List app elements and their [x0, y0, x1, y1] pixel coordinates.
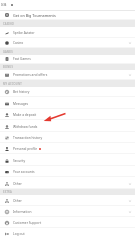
- button[interactable]: Your accounts: [0, 166, 135, 177]
- button[interactable]: Messages: [0, 98, 135, 109]
- button[interactable]: Transaction history: [0, 132, 135, 143]
- button[interactable]: Other: [0, 195, 135, 206]
- button[interactable]: Get on Big Tournaments: [0, 10, 135, 20]
- staticText: Security: [13, 159, 26, 163]
- staticText: Bet history: [13, 90, 30, 94]
- button[interactable]: Fast Games: [0, 54, 135, 64]
- button[interactable]: Promotions and offers: [0, 69, 135, 80]
- staticText: Promotions and offers: [13, 73, 48, 77]
- button[interactable]: Other: [0, 178, 135, 189]
- button[interactable]: Withdraw funds: [0, 121, 135, 132]
- button[interactable]: Casino: [0, 38, 135, 48]
- staticText: GAMES: [3, 50, 13, 54]
- staticText: BONUS: [3, 65, 14, 69]
- staticText: Log out: [13, 232, 25, 236]
- button[interactable]: Make a deposit: [0, 109, 135, 120]
- button[interactable]: Personal profile: [0, 143, 135, 154]
- button[interactable]: Spribe Aviator: [0, 27, 135, 38]
- staticText: Personal profile: [13, 147, 38, 151]
- staticText: Information: [13, 210, 32, 214]
- button[interactable]: Information: [0, 206, 135, 217]
- staticText: 0:36: [1, 3, 7, 7]
- staticText: Customer Support: [13, 221, 42, 225]
- button[interactable]: Bet history: [0, 86, 135, 97]
- button[interactable]: Log out: [0, 228, 135, 239]
- staticText: Fast Games: [13, 57, 31, 61]
- staticText: Withdraw funds: [13, 125, 38, 129]
- button[interactable]: Customer Support: [0, 217, 135, 228]
- staticText: Make a deposit: [13, 113, 37, 117]
- staticText: Other: [13, 182, 22, 186]
- staticText: CASINO: [3, 22, 14, 26]
- staticText: MY ACCOUNT: [3, 82, 22, 86]
- button[interactable]: Security: [0, 155, 135, 166]
- staticText: Messages: [13, 102, 29, 106]
- staticText: Get on Big Tournaments: [13, 13, 56, 18]
- staticText: Spribe Aviator: [13, 31, 35, 35]
- staticText: Your accounts: [13, 170, 35, 174]
- staticText: Casino: [13, 41, 24, 45]
- staticText: EXTRA: [3, 190, 12, 194]
- staticText: Transaction history: [13, 136, 43, 140]
- staticText: Other: [13, 199, 22, 203]
